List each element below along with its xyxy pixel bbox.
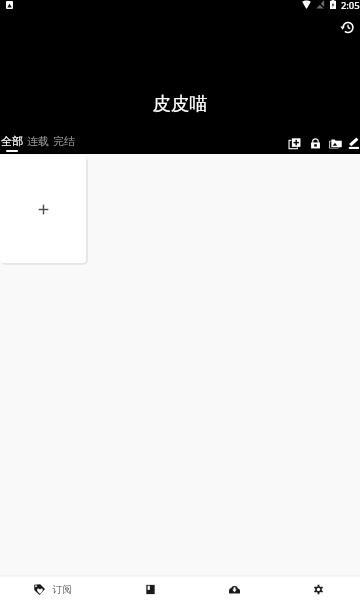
staticText: 全部: [1, 134, 23, 148]
button[interactable]: 完结: [53, 134, 75, 152]
button[interactable]: Downloads: [192, 575, 276, 600]
button[interactable]: Library: [108, 575, 192, 600]
button[interactable]: Settings: [276, 575, 360, 600]
button[interactable]: Add to library: [286, 135, 302, 151]
staticText: 皮皮喵: [152, 92, 208, 115]
staticText: 2:05: [341, 0, 360, 12]
button[interactable]: Lock: [307, 135, 323, 151]
button[interactable]: [0, 155, 86, 263]
button[interactable]: History: [337, 17, 357, 37]
button[interactable]: 订阅: [0, 575, 108, 600]
button[interactable]: Collections: [327, 135, 343, 151]
button[interactable]: 全部: [1, 134, 23, 152]
staticText: 完结: [53, 134, 75, 148]
button[interactable]: 连载: [27, 134, 49, 152]
staticText: 订阅: [52, 583, 72, 596]
staticText: 连载: [27, 134, 49, 148]
button[interactable]: Edit: [345, 135, 360, 151]
